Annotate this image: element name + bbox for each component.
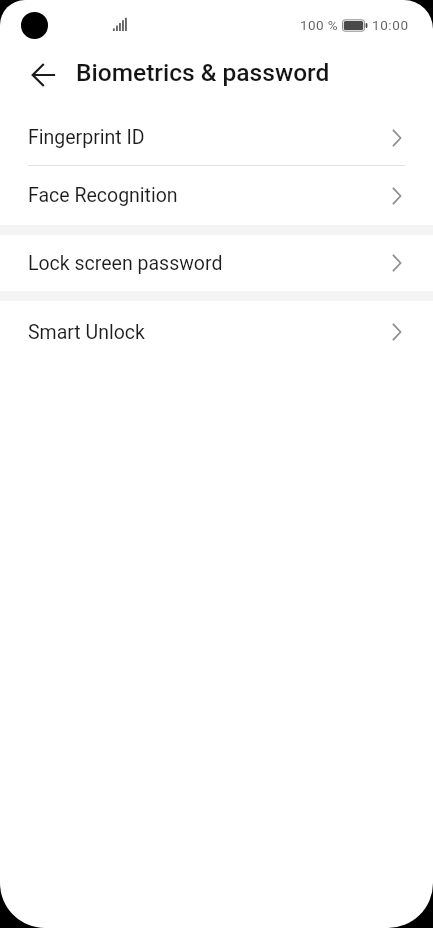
staticText: 100 % [300, 17, 338, 33]
staticText: Biometrics & password [76, 58, 330, 87]
button[interactable]: Smart Unlock [0, 301, 433, 363]
staticText: Fingerprint ID [28, 126, 145, 149]
button[interactable]: Lock screen password [0, 235, 433, 291]
button[interactable] [22, 55, 62, 95]
button[interactable]: Face Recognition [0, 166, 433, 225]
button[interactable]: Fingerprint ID [0, 110, 433, 165]
staticText: Lock screen password [28, 252, 223, 275]
staticText: Smart Unlock [28, 321, 145, 344]
staticText: Face Recognition [28, 184, 178, 207]
staticText: 10:00 [372, 17, 409, 33]
